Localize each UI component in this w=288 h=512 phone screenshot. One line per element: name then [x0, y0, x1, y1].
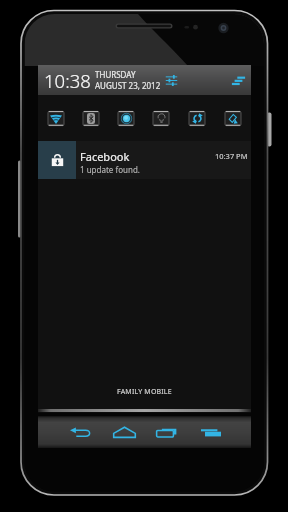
button[interactable]: Facebook: [38, 141, 251, 179]
staticText: 1 update found.: [80, 164, 140, 175]
staticText: 10:37 PM: [215, 151, 248, 161]
button[interactable]: Back: [59, 416, 101, 448]
button[interactable]: Auto-rotate: [224, 110, 242, 127]
button[interactable]: Clear all notifications: [227, 65, 249, 95]
button[interactable]: Quick settings: [161, 65, 182, 95]
staticText: Facebook: [80, 149, 130, 164]
button[interactable]: Wi-Fi: [47, 110, 65, 127]
button[interactable]: Hide keyboard: [190, 416, 232, 448]
button[interactable]: Bluetooth: [82, 110, 100, 127]
button[interactable]: Recent apps: [145, 416, 187, 448]
staticText: THURSDAY: [95, 69, 136, 80]
button[interactable]: Home: [103, 416, 145, 448]
staticText: 10:38: [44, 68, 91, 93]
button[interactable]: Brightness: [152, 110, 170, 127]
staticText: FAMILY MOBILE: [117, 387, 172, 397]
staticText: AUGUST 23, 2012: [95, 80, 161, 91]
button[interactable]: Sync: [188, 110, 206, 127]
button[interactable]: Location: [117, 110, 135, 127]
